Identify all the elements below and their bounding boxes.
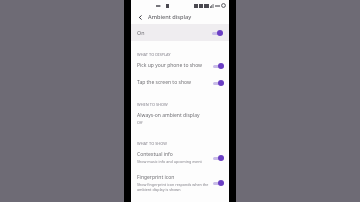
button[interactable]: Toggle	[213, 63, 224, 69]
button[interactable]: Toggle	[213, 80, 224, 86]
staticText: On	[137, 29, 145, 36]
staticText: WHEN TO SHOW	[137, 102, 168, 107]
staticText: Off	[137, 120, 143, 125]
button[interactable]: Toggle	[212, 30, 223, 36]
staticText: Fingerprint icon	[137, 174, 175, 181]
button[interactable]: Pick up your phone to show	[131, 57, 229, 74]
button[interactable]: Fingerprint icon	[131, 169, 229, 197]
staticText: Tap the screen to show	[137, 79, 191, 86]
staticText: Show music info and upcoming event	[137, 159, 202, 164]
staticText: Always-on ambient display	[137, 112, 200, 119]
button[interactable]: Contextual info	[131, 146, 229, 169]
staticText: WHAT TO SHOW	[137, 141, 167, 146]
staticText: WHAT TO DISPLAY	[137, 52, 171, 57]
button[interactable]: Always-on ambient display	[131, 107, 229, 130]
button[interactable]: Back	[135, 12, 146, 23]
button[interactable]: On	[131, 24, 229, 41]
staticText: Show fingerprint icon responds when the …	[137, 182, 210, 192]
staticText: Contextual info	[137, 151, 173, 158]
button[interactable]: Toggle	[213, 180, 224, 186]
button[interactable]: Toggle	[213, 155, 224, 161]
staticText: Pick up your phone to show	[137, 62, 203, 69]
button[interactable]: Tap the screen to show	[131, 74, 229, 91]
staticText: Ambient display	[148, 13, 192, 21]
